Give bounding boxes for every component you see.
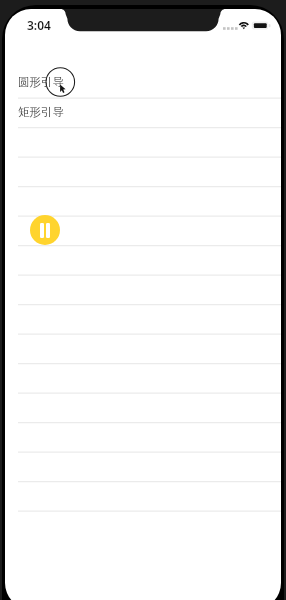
button[interactable] <box>5 393 281 423</box>
staticText: 矩形引导 <box>18 105 64 119</box>
button[interactable] <box>5 157 281 187</box>
button[interactable]: 圆形引导 <box>5 68 281 98</box>
button[interactable] <box>5 275 281 305</box>
other: Guide highlight <box>5 9 281 600</box>
staticText: 3:04 <box>27 17 51 33</box>
button[interactable] <box>5 334 281 364</box>
button[interactable] <box>5 481 281 511</box>
button[interactable] <box>5 186 281 216</box>
button[interactable]: Pause <box>30 215 60 245</box>
button[interactable] <box>5 216 281 246</box>
button[interactable] <box>5 422 281 452</box>
button[interactable] <box>5 452 281 482</box>
button[interactable]: 矩形引导 <box>5 98 281 128</box>
button[interactable] <box>5 363 281 393</box>
button[interactable] <box>5 127 281 157</box>
button[interactable] <box>5 304 281 334</box>
button[interactable] <box>5 245 281 275</box>
staticText: 圆形引导 <box>18 75 64 89</box>
